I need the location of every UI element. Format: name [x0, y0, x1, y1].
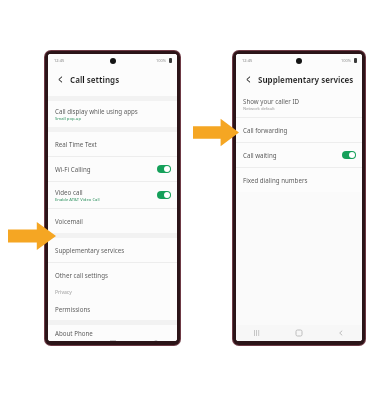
staticText: Permissions	[55, 305, 91, 313]
staticText: Fixed dialing numbers	[243, 176, 308, 184]
button[interactable]: Back	[242, 73, 255, 86]
staticText: Show your caller ID	[243, 97, 300, 105]
staticText: Small pop-up	[55, 116, 82, 122]
staticText: About Phone	[55, 329, 93, 337]
button[interactable]: Recents	[236, 325, 278, 341]
button[interactable]: About Phone	[48, 325, 177, 341]
staticText: Other call settings	[55, 271, 108, 279]
button[interactable]: Wi-Fi Calling	[48, 157, 177, 181]
button[interactable]: Call display while using apps	[48, 101, 177, 127]
button[interactable]: Show your caller ID	[236, 91, 362, 117]
staticText: 100%	[341, 58, 352, 63]
button[interactable]: Home	[278, 325, 320, 341]
staticText: Call display while using apps	[55, 107, 138, 115]
button[interactable]: Real Time Text	[48, 132, 177, 156]
staticText: Call forwarding	[243, 126, 288, 134]
staticText: Enable AT&T Video Call	[55, 197, 100, 203]
staticText: Supplementary services	[55, 246, 125, 254]
staticText: Wi-Fi Calling	[55, 165, 91, 173]
staticText: Call waiting	[243, 151, 277, 159]
staticText: 12:45	[54, 58, 65, 63]
button[interactable]: Fixed dialing numbers	[236, 168, 362, 192]
button[interactable]: Supplementary services	[48, 238, 177, 262]
button[interactable]: Call forwarding	[236, 118, 362, 142]
staticText: Video call	[55, 188, 83, 196]
staticText: Real Time Text	[55, 140, 97, 148]
button[interactable]: Video call	[48, 182, 177, 208]
staticText: Voicemail	[55, 217, 83, 225]
button[interactable]: Voicemail	[48, 209, 177, 233]
button[interactable]: Permissions	[48, 298, 177, 320]
staticText: Network default	[243, 106, 275, 112]
staticText: 100%	[156, 58, 167, 63]
staticText: Call settings	[70, 74, 120, 85]
button[interactable]: Back	[54, 73, 67, 86]
staticText: 12:45	[242, 58, 253, 63]
staticText: Supplementary services	[258, 74, 354, 85]
button[interactable]: Call waiting	[236, 143, 362, 167]
staticText: Privacy	[55, 289, 72, 296]
button[interactable]: Back	[320, 325, 362, 341]
button[interactable]: Other call settings	[48, 263, 177, 287]
